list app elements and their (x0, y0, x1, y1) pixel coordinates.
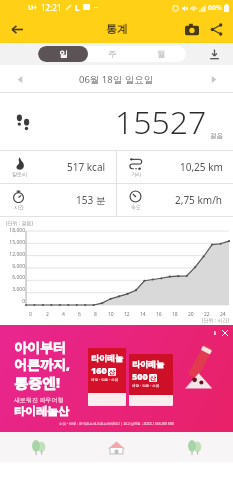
staticText: 12 (124, 311, 130, 318)
button[interactable]: Previous day (10, 69, 30, 89)
staticText: 8 (94, 311, 97, 318)
staticText: 일 (59, 49, 68, 60)
staticText: 6,000 (12, 274, 25, 281)
staticText: 새로워진 파우더형 (14, 396, 64, 404)
staticText: 타이레놀산 (14, 404, 69, 418)
button[interactable]: 시간 (0, 184, 116, 216)
staticText: 24 (220, 311, 226, 318)
staticText: 12:21 (41, 2, 62, 13)
staticText: U+ (28, 3, 38, 13)
staticText: 160 (91, 364, 107, 376)
staticText: 16 (156, 311, 162, 318)
button[interactable]: Close ad (220, 328, 230, 338)
button[interactable]: Ad info (210, 328, 220, 338)
staticText: 18 (172, 311, 178, 318)
staticText: 18,000 (9, 227, 25, 234)
staticText: 15,000 (9, 239, 25, 246)
button[interactable]: 속도 (117, 184, 233, 216)
button[interactable]: 주 (88, 46, 137, 62)
staticText: 12,000 (9, 251, 25, 258)
staticText: 6 (78, 311, 81, 318)
staticText: 해열 • 진통 • 소염 (132, 383, 160, 388)
staticText: 153 분 (76, 193, 106, 207)
staticText: 20 (188, 311, 194, 318)
button[interactable]: 아이부터 (0, 325, 233, 432)
staticText: 수입 • 판매 : 한국존슨앤드존슨판매(유) | 광고심의필 : 2023-1… (59, 421, 174, 426)
button[interactable]: 칼로리 (0, 151, 116, 183)
staticText: 0 (29, 311, 32, 318)
button[interactable]: Download (205, 45, 223, 63)
staticText: (단위 : 시간) (202, 317, 229, 324)
staticText: (단위 : 걸음) (6, 220, 33, 227)
button[interactable]: Back (6, 18, 28, 40)
staticText: 어른까지, (14, 355, 71, 373)
staticText: 500 (132, 370, 148, 382)
staticText: 22 (204, 311, 210, 318)
staticText: 0 (22, 298, 25, 305)
staticText: 9,000 (12, 263, 25, 270)
button[interactable]: Camera (181, 18, 203, 40)
staticText: 2,75 km/h (175, 193, 223, 207)
staticText: 15527 (115, 100, 207, 144)
staticText: 칼로리 (12, 171, 27, 177)
staticText: 걸음 (210, 132, 223, 140)
button[interactable]: 월 (137, 46, 186, 62)
staticText: 3,000 (12, 286, 25, 293)
staticText: 아이부터 (14, 339, 66, 355)
staticText: 타이레놀 (91, 353, 123, 363)
staticText: 해열 • 진통 • 소염 (91, 377, 119, 382)
button[interactable]: Home (77, 432, 155, 462)
staticText: 10,25 km (180, 160, 223, 174)
staticText: 10 (108, 311, 114, 318)
staticText: 주 (108, 49, 117, 60)
button[interactable]: Next day (203, 69, 223, 89)
staticText: 타이레놀 (132, 359, 164, 369)
button[interactable]: Nature (155, 432, 233, 462)
staticText: 산 (109, 368, 115, 376)
staticText: 2 (46, 311, 49, 318)
staticText: L (75, 2, 80, 13)
staticText: 4 (62, 311, 65, 318)
button[interactable]: 거리 (117, 151, 233, 183)
staticText: 속도 (131, 204, 141, 210)
staticText: 통계 (106, 22, 128, 36)
staticText: 66% (208, 3, 222, 13)
staticText: 산 (150, 374, 156, 382)
button[interactable]: Share (205, 18, 227, 40)
button[interactable]: Forest (0, 432, 77, 462)
staticText: 거리 (131, 171, 141, 177)
staticText: i (214, 329, 216, 337)
staticText: 월 (157, 49, 166, 60)
staticText: 시간 (14, 204, 24, 210)
staticText: 통증엔! (14, 373, 61, 392)
staticText: 14 (140, 311, 146, 318)
staticText: 517 kcal (67, 160, 106, 174)
button[interactable]: 일 (38, 46, 88, 62)
staticText: ·· (94, 3, 98, 13)
staticText: 06월 18일 일요일 (79, 73, 154, 86)
